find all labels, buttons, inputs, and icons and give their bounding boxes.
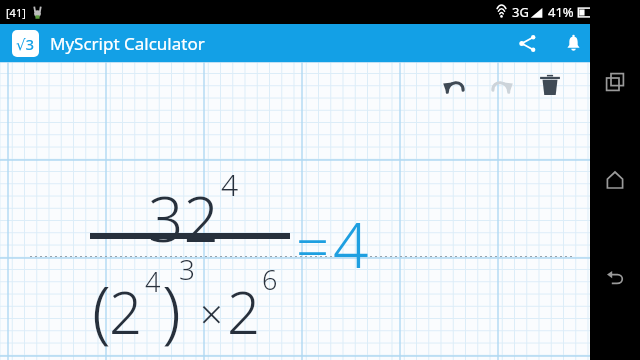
staticText: 4 [221,164,239,205]
button[interactable]: Delete [526,66,574,104]
staticText: 3 [179,250,195,288]
staticText: 2 [109,272,143,351]
staticText: MyScript Calculator [50,32,205,55]
button[interactable]: Undo [430,66,478,104]
staticText: 4 [333,202,369,286]
staticText: 2 [227,272,261,351]
staticText: 4 [145,263,161,300]
staticText: 32 [148,176,219,260]
button[interactable]: Redo [478,66,526,104]
staticText: 6 [262,261,278,298]
staticText: 3G [512,3,529,21]
button[interactable]: Back [593,255,637,299]
staticText: ( [92,263,111,356]
staticText: [41] [6,5,26,20]
staticText: = [296,206,330,285]
staticText: 41% [548,3,574,21]
staticText: √3 [16,34,35,54]
button[interactable]: Share [504,24,550,62]
button[interactable]: Notifications [550,24,596,62]
button[interactable]: Home [593,158,637,202]
staticText: × [200,286,223,340]
button[interactable]: Recents [593,60,637,104]
staticText: ) [162,263,181,356]
